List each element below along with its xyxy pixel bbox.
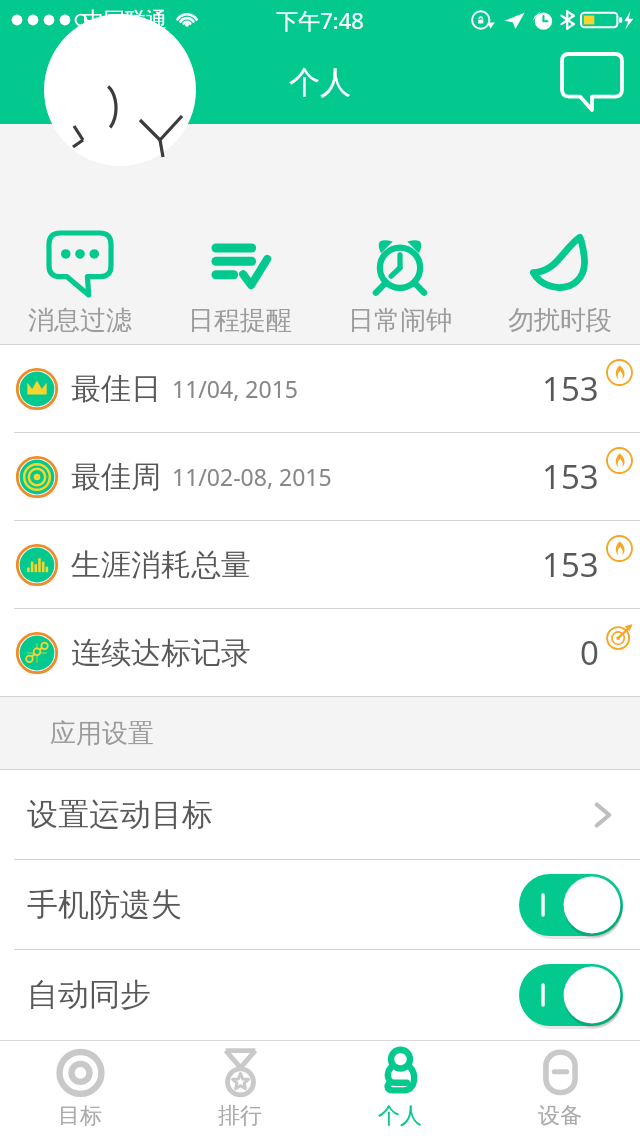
staticText: 设备 xyxy=(538,1102,582,1130)
staticText: 153 xyxy=(542,454,599,499)
staticText: 生涯消耗总量 xyxy=(71,546,251,584)
staticText: 下午7:48 xyxy=(276,5,364,35)
staticText: 目标 xyxy=(58,1102,102,1130)
staticText: 日常闹钟 xyxy=(348,304,452,337)
button[interactable]: 自动同步 开关 xyxy=(519,964,623,1026)
button[interactable]: 目标 xyxy=(0,1041,160,1136)
button[interactable]: 设置运动目标 xyxy=(0,770,640,859)
staticText: 个人 xyxy=(289,63,351,102)
staticText: 中国联通 xyxy=(83,7,167,33)
staticText: 自动同步 xyxy=(27,975,151,1014)
staticText: 排行 xyxy=(218,1102,262,1130)
button[interactable]: 连续达标记录 xyxy=(0,609,640,696)
staticText: 日程提醒 xyxy=(188,304,292,337)
staticText: 连续达标记录 xyxy=(71,634,251,672)
staticText: 0 xyxy=(580,630,599,675)
staticText: 11/02-08, 2015 xyxy=(172,461,332,492)
button[interactable]: 日常闹钟 xyxy=(320,219,480,344)
button[interactable]: 个人 xyxy=(320,1041,480,1136)
staticText: 最佳日 xyxy=(71,370,161,408)
staticText: 手机防遗失 xyxy=(27,885,182,924)
button[interactable]: 最佳日 xyxy=(0,345,640,432)
staticText: 最佳周 xyxy=(71,458,161,496)
button[interactable]: 日程提醒 xyxy=(160,219,320,344)
button[interactable]: 消息 xyxy=(556,46,628,118)
staticText: 个人 xyxy=(378,1102,422,1130)
staticText: 11/04, 2015 xyxy=(172,373,298,404)
button[interactable]: 最佳周 xyxy=(0,433,640,520)
button[interactable]: 勿扰时段 xyxy=(480,219,640,344)
staticText: 应用设置 xyxy=(50,717,154,750)
button[interactable]: 生涯消耗总量 xyxy=(0,521,640,608)
staticText: 勿扰时段 xyxy=(508,304,612,337)
staticText: 153 xyxy=(542,366,599,411)
staticText: 设置运动目标 xyxy=(27,795,213,834)
button[interactable]: 排行 xyxy=(160,1041,320,1136)
staticText: 消息过滤 xyxy=(28,304,132,337)
staticText: 153 xyxy=(542,542,599,587)
button[interactable]: 手机防遗失 开关 xyxy=(519,874,623,936)
button[interactable]: 消息过滤 xyxy=(0,219,160,344)
button[interactable]: 设备 xyxy=(480,1041,640,1136)
